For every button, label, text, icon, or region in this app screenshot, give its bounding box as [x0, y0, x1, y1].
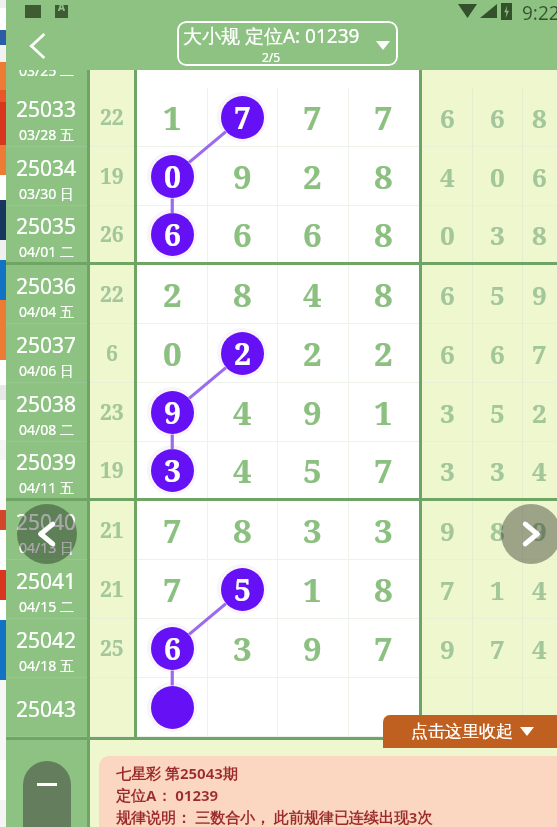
- staticText: 4: [532, 572, 547, 607]
- staticText: 9: [532, 277, 547, 312]
- staticText: 4: [233, 390, 252, 435]
- staticText: 04/04 五: [19, 302, 74, 321]
- staticText: 5: [490, 277, 505, 312]
- staticText: 25033: [16, 95, 77, 124]
- staticText: 3: [490, 453, 505, 488]
- staticText: 26: [100, 220, 124, 249]
- staticText: 0: [490, 159, 505, 194]
- button[interactable]: 25034: [6, 147, 557, 205]
- staticText: 8: [233, 272, 252, 317]
- staticText: 4: [532, 631, 547, 666]
- staticText: 8: [532, 100, 547, 135]
- staticText: 03/30 日: [19, 184, 74, 203]
- button[interactable]: 25041: [6, 560, 557, 618]
- staticText: 6: [532, 159, 547, 194]
- staticText: 定位A： 01239: [116, 785, 219, 805]
- staticText: 04/15 二: [19, 597, 74, 616]
- button[interactable]: 25038: [6, 383, 557, 441]
- staticText: 8: [490, 513, 505, 548]
- staticText: 4: [303, 272, 322, 317]
- staticText: 6: [440, 336, 455, 371]
- staticText: 04/11 五: [19, 478, 74, 497]
- staticText: 19: [100, 456, 124, 485]
- staticText: 03/28 五: [19, 125, 74, 144]
- staticText: 点击这里收起: [411, 721, 513, 742]
- staticText: 25037: [16, 331, 77, 360]
- button[interactable]: 25037: [6, 324, 557, 382]
- staticText: 2: [163, 272, 182, 317]
- staticText: 3: [440, 453, 455, 488]
- staticText: 3: [490, 217, 505, 252]
- staticText: 6: [440, 277, 455, 312]
- staticText: 1: [163, 95, 182, 140]
- staticText: 5: [234, 569, 251, 610]
- staticText: 9: [164, 392, 181, 433]
- button[interactable]: 点击这里收起: [383, 715, 557, 748]
- staticText: 4: [233, 448, 252, 493]
- staticText: 25041: [16, 567, 77, 596]
- staticText: 04/01 二: [19, 242, 74, 261]
- button[interactable]: Previous page: [17, 504, 77, 564]
- staticText: 2: [234, 333, 251, 374]
- staticText: 8: [532, 217, 547, 252]
- staticText: 3: [303, 508, 322, 553]
- staticText: 7: [440, 572, 455, 607]
- button[interactable]: 25040: [6, 501, 557, 559]
- staticText: 9:22: [522, 0, 557, 22]
- staticText: 1: [374, 390, 393, 435]
- staticText: 25039: [16, 448, 77, 477]
- staticText: 5: [490, 395, 505, 430]
- staticText: 6: [233, 212, 252, 257]
- staticText: 6: [490, 100, 505, 135]
- staticText: 4: [532, 453, 547, 488]
- staticText: 2: [303, 154, 322, 199]
- staticText: 7: [532, 336, 547, 371]
- staticText: 25040: [16, 508, 77, 537]
- staticText: 25034: [16, 154, 77, 183]
- button[interactable]: 25035: [6, 206, 557, 262]
- staticText: 25036: [16, 272, 77, 301]
- staticText: 8: [374, 272, 393, 317]
- staticText: 23: [100, 398, 124, 427]
- staticText: 8: [233, 508, 252, 553]
- staticText: 9: [303, 390, 322, 435]
- staticText: 0: [164, 156, 181, 197]
- button[interactable]: Collapse: [23, 761, 71, 827]
- staticText: 04/08 二: [19, 420, 74, 439]
- button[interactable]: Back: [16, 25, 58, 67]
- staticText: 7: [374, 626, 393, 671]
- staticText: 6: [164, 214, 181, 255]
- staticText: 3: [374, 508, 393, 553]
- staticText: 0: [163, 331, 182, 376]
- button[interactable]: Next page: [501, 504, 557, 564]
- button[interactable]: 25043: [6, 678, 557, 736]
- staticText: 21: [100, 516, 124, 545]
- button[interactable]: 25033: [6, 88, 557, 146]
- staticText: 6: [303, 212, 322, 257]
- staticText: 2: [532, 395, 547, 430]
- button[interactable]: 25042: [6, 619, 557, 677]
- staticText: 04/06 日: [19, 361, 74, 380]
- staticText: 04/13 日: [19, 538, 74, 557]
- staticText: 6: [440, 100, 455, 135]
- button[interactable]: 大小规 定位A: 01239: [177, 21, 398, 66]
- staticText: 七星彩 第25043期: [116, 763, 238, 783]
- staticText: 21: [100, 575, 124, 604]
- staticText: 22: [100, 103, 124, 132]
- staticText: 04/18 五: [19, 656, 74, 675]
- staticText: 25043: [16, 695, 77, 724]
- staticText: 25042: [16, 626, 77, 655]
- button[interactable]: 25039: [6, 442, 557, 498]
- staticText: 7: [163, 567, 182, 612]
- staticText: 9: [440, 513, 455, 548]
- staticText: 3: [440, 395, 455, 430]
- staticText: 7: [234, 97, 251, 138]
- staticText: 4: [440, 159, 455, 194]
- staticText: 9: [532, 513, 547, 548]
- staticText: 6: [164, 628, 181, 669]
- button[interactable]: 25036: [6, 265, 557, 323]
- staticText: 7: [374, 448, 393, 493]
- staticText: 1: [303, 567, 322, 612]
- staticText: 7: [374, 95, 393, 140]
- staticText: 0: [440, 217, 455, 252]
